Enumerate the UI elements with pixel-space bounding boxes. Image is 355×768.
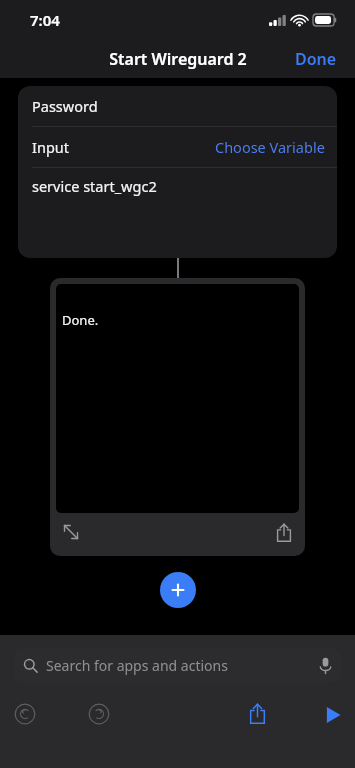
staticText: 7:04	[30, 10, 60, 30]
staticText: Input	[32, 137, 69, 157]
button[interactable]: Expand	[56, 517, 86, 547]
button[interactable]: Share output	[269, 517, 299, 547]
button[interactable]: Done.	[50, 278, 305, 556]
button[interactable]: Share	[243, 699, 271, 727]
staticText: Choose Variable	[215, 137, 325, 157]
staticText: Password	[32, 96, 98, 116]
button[interactable]: Redo	[85, 700, 113, 728]
button[interactable]: Done	[287, 42, 345, 76]
staticText: service start_wgc2	[32, 176, 157, 196]
staticText: Done.	[62, 311, 99, 329]
staticText: Start Wireguard 2	[109, 48, 247, 70]
button[interactable]: Password	[18, 86, 337, 258]
button[interactable]: Add action	[160, 572, 196, 608]
staticText: Search for apps and actions	[46, 656, 228, 675]
button[interactable]: Search for apps and actions	[14, 648, 341, 683]
staticText: Done	[295, 48, 337, 70]
button[interactable]: Undo	[11, 700, 39, 728]
button[interactable]: Run shortcut	[319, 701, 347, 729]
